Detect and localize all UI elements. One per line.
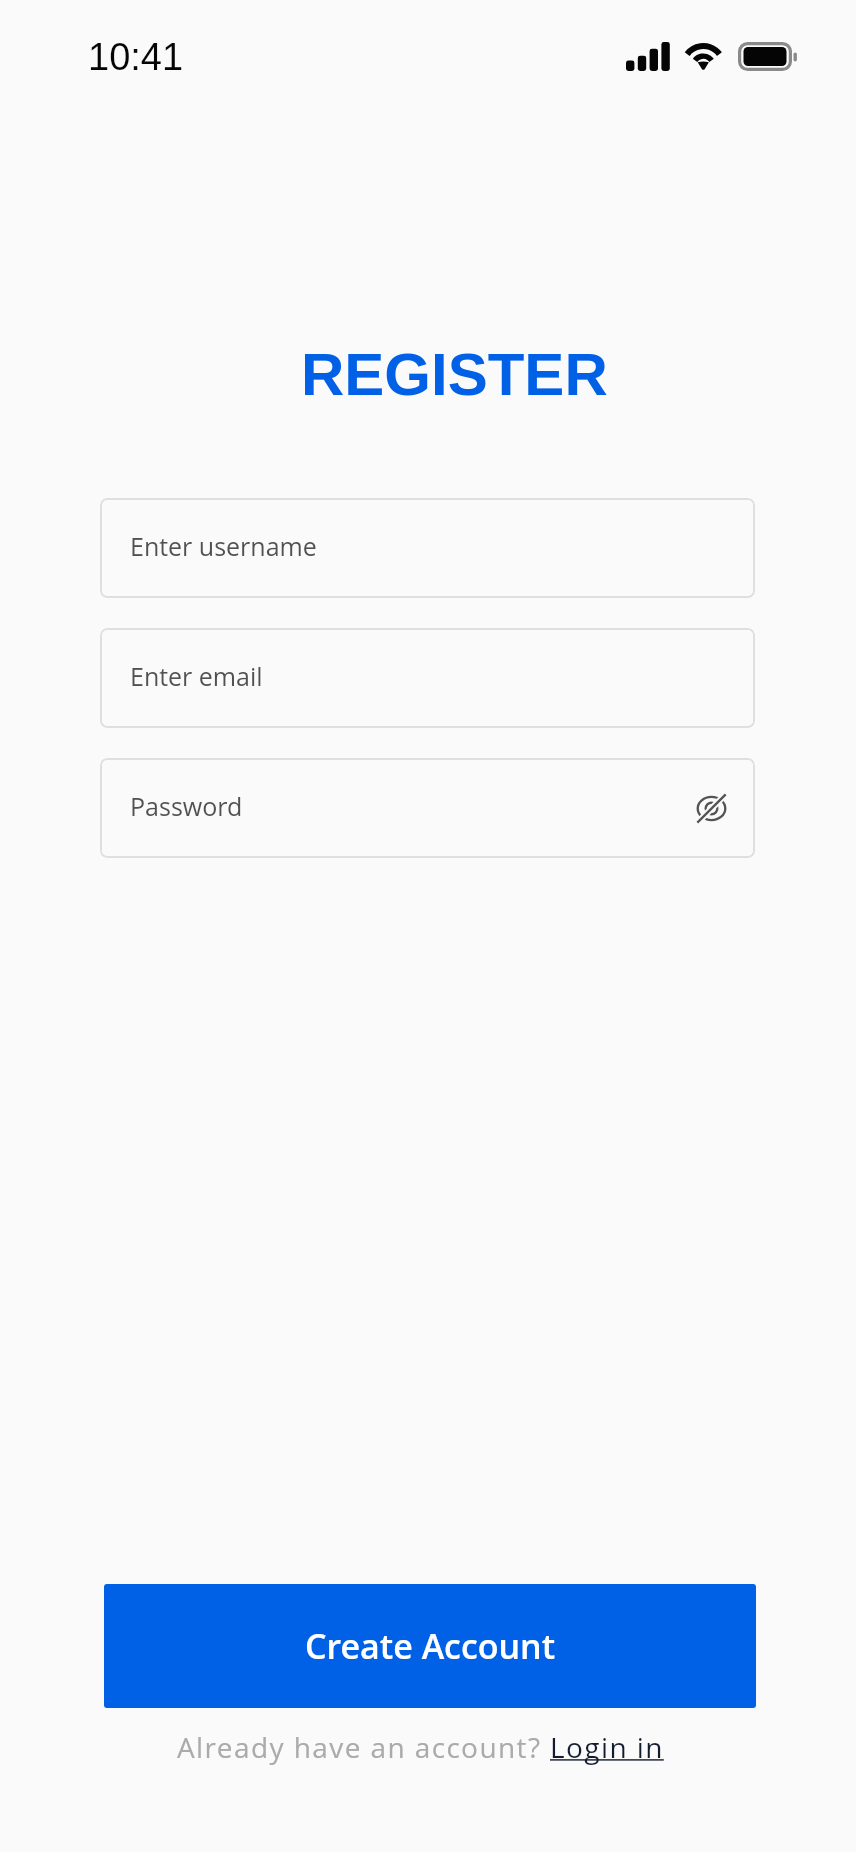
button[interactable]: Password bbox=[100, 758, 755, 858]
staticText: Enter username bbox=[130, 529, 317, 563]
staticText: Enter email bbox=[130, 659, 263, 693]
staticText: Password bbox=[130, 789, 243, 823]
staticText: REGISTER bbox=[301, 341, 608, 408]
button[interactable]: Enter username bbox=[100, 498, 755, 598]
button[interactable]: Create Account bbox=[104, 1584, 756, 1708]
button[interactable]: Login in bbox=[550, 1728, 664, 1766]
staticText: Create Account bbox=[305, 1623, 556, 1669]
button[interactable]: Enter email bbox=[100, 628, 755, 728]
button[interactable]: Show password bbox=[682, 779, 740, 837]
staticText: Login in bbox=[550, 1728, 664, 1766]
staticText: 10:41 bbox=[88, 36, 184, 78]
staticText: Already have an account? bbox=[177, 1728, 550, 1766]
